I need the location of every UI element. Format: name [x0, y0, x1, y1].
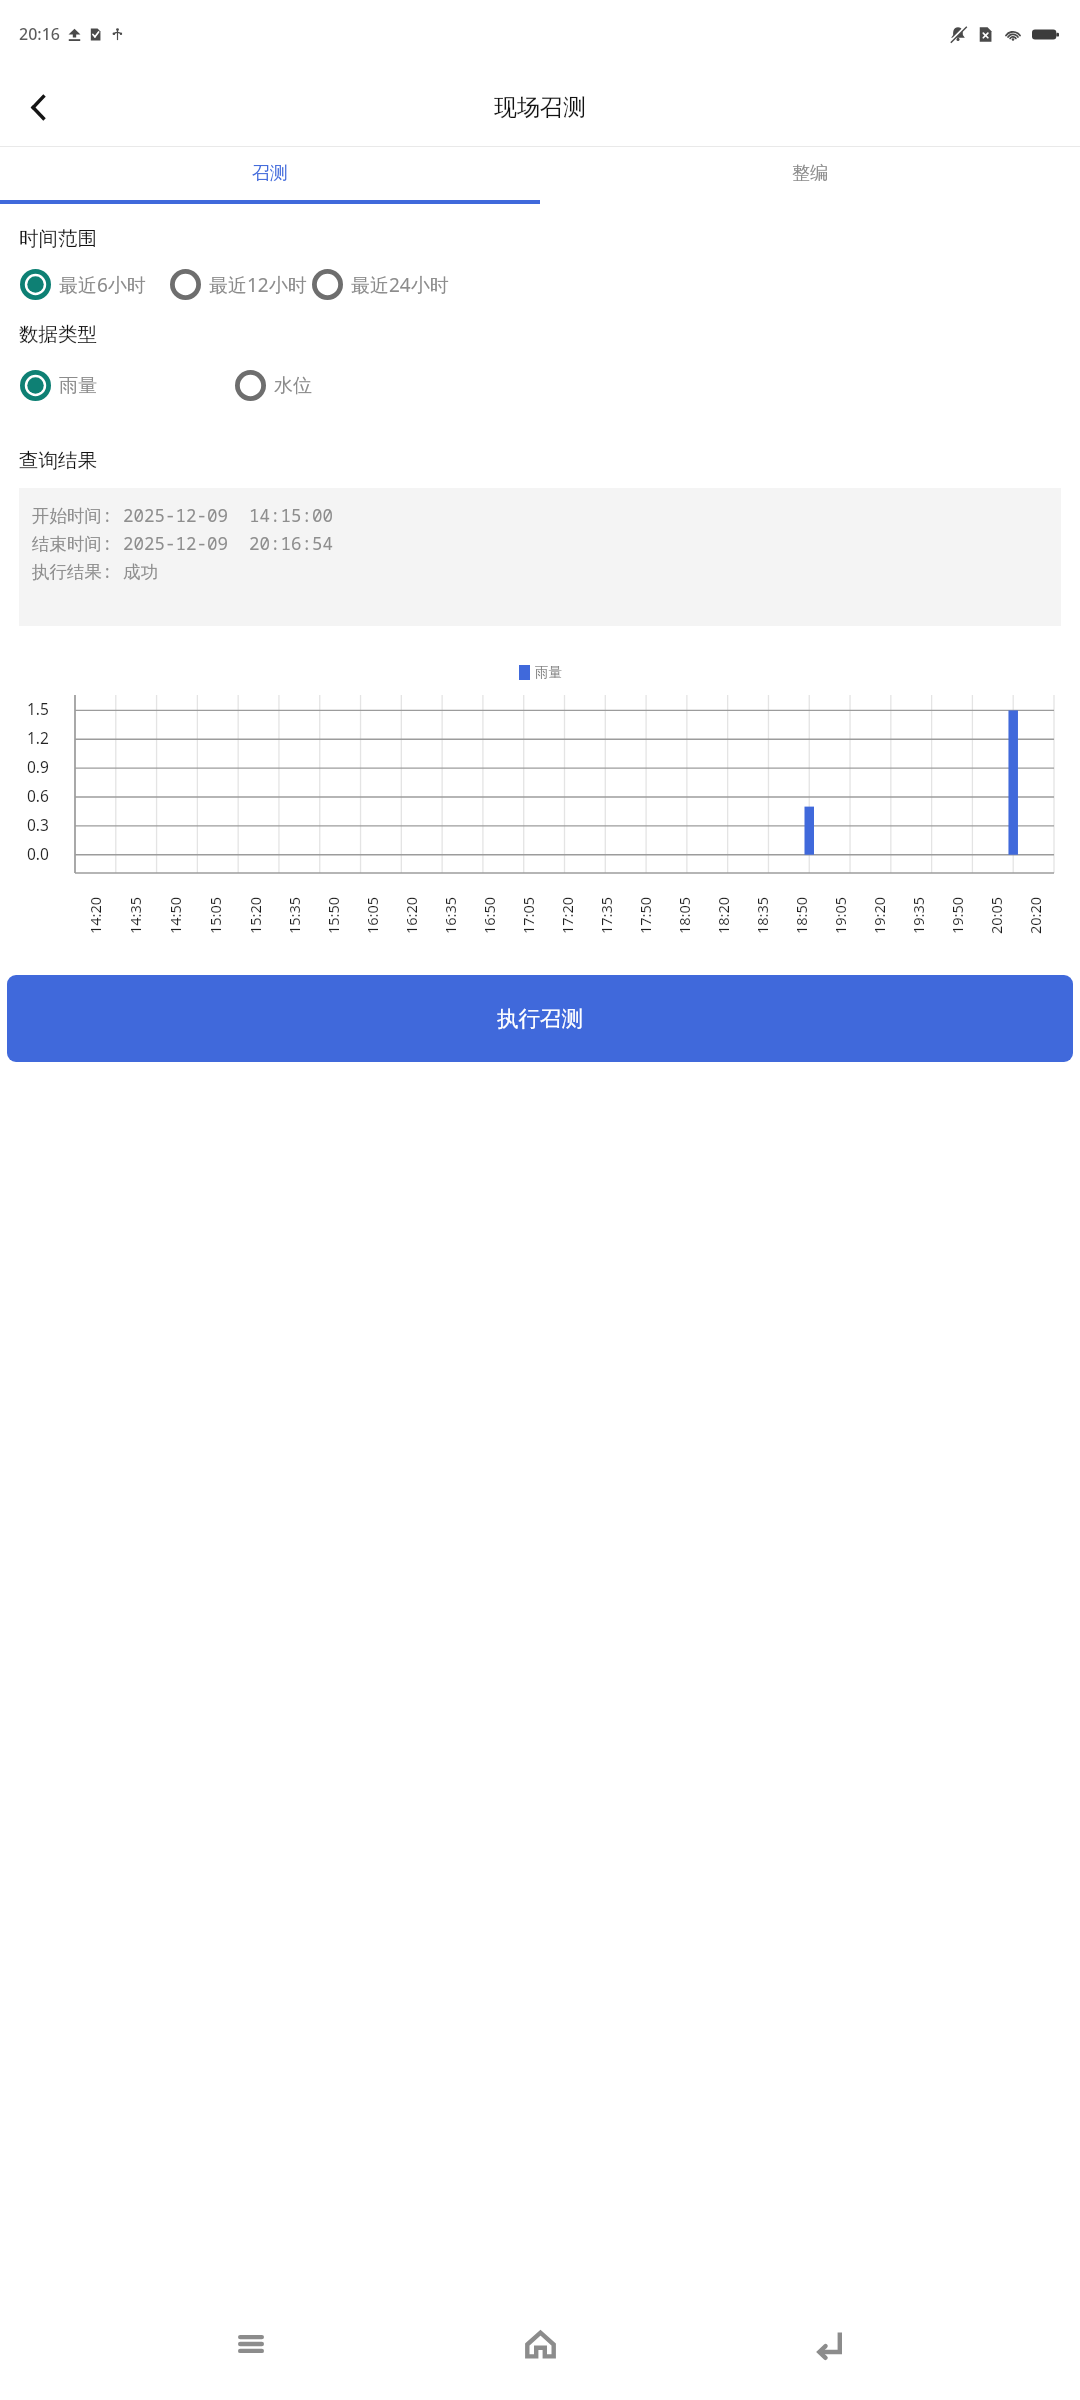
button[interactable]: 最近24小时 — [311, 268, 449, 301]
staticText: 1.5 — [27, 698, 49, 719]
staticText: 雨量 — [535, 664, 562, 681]
button[interactable]: 返回 — [8, 77, 68, 137]
staticText: 20:20 — [1025, 896, 1045, 934]
staticText: 20:05 — [986, 896, 1006, 934]
staticText: 17:05 — [518, 896, 538, 934]
staticText: 最近12小时 — [209, 272, 307, 298]
button[interactable]: 最近12小时 — [169, 268, 311, 301]
button[interactable]: 召测 — [0, 147, 540, 200]
staticText: 结束时间: 2025-12-09 20:16:54 — [32, 531, 333, 555]
staticText: 0.6 — [27, 785, 49, 806]
staticText: 18:20 — [713, 896, 733, 934]
staticText: 17:35 — [596, 896, 616, 934]
staticText: 数据类型 — [19, 322, 97, 347]
button[interactable]: 返回 — [791, 2305, 869, 2383]
staticText: 16:35 — [440, 896, 460, 934]
staticText: 0.9 — [27, 756, 49, 777]
button[interactable]: 雨量 — [19, 369, 234, 402]
staticText: 14:20 — [85, 896, 105, 934]
button[interactable]: 最近任务 — [212, 2305, 290, 2383]
staticText: 0.0 — [27, 843, 49, 864]
staticText: 15:05 — [205, 896, 225, 934]
button[interactable]: 主屏幕 — [501, 2305, 579, 2383]
staticText: 开始时间: 2025-12-09 14:15:00 — [32, 503, 333, 527]
staticText: 雨量 — [59, 374, 97, 398]
button[interactable]: 整编 — [540, 147, 1080, 200]
staticText: 19:20 — [869, 896, 889, 934]
staticText: 17:20 — [557, 896, 577, 934]
staticText: 0.3 — [27, 814, 49, 835]
staticText: 时间范围 — [19, 226, 97, 251]
staticText: 14:35 — [125, 896, 145, 934]
staticText: 18:05 — [674, 896, 694, 934]
staticText: 召测 — [252, 162, 288, 185]
staticText: 1.2 — [27, 727, 49, 748]
staticText: 15:50 — [323, 896, 343, 934]
button[interactable]: 最近6小时 — [19, 268, 169, 301]
staticText: 15:35 — [284, 896, 304, 934]
staticText: 20:16 — [19, 23, 60, 45]
staticText: 18:35 — [752, 896, 772, 934]
staticText: 最近6小时 — [59, 272, 146, 298]
staticText: 19:35 — [908, 896, 928, 934]
staticText: 15:20 — [245, 896, 265, 934]
staticText: 执行召测 — [497, 1005, 583, 1032]
staticText: 整编 — [792, 162, 828, 185]
staticText: 16:05 — [362, 896, 382, 934]
staticText: 14:50 — [165, 896, 185, 934]
staticText: 执行结果: 成功 — [32, 559, 158, 583]
staticText: 16:50 — [479, 896, 499, 934]
staticText: 17:50 — [635, 896, 655, 934]
staticText: 19:50 — [947, 896, 967, 934]
staticText: 查询结果 — [19, 448, 97, 473]
staticText: 水位 — [274, 374, 312, 398]
staticText: 16:20 — [401, 896, 421, 934]
button[interactable]: 执行召测 — [7, 975, 1073, 1062]
staticText: 最近24小时 — [351, 272, 449, 298]
staticText: 现场召测 — [494, 93, 586, 122]
staticText: 18:50 — [791, 896, 811, 934]
button[interactable]: 水位 — [234, 369, 312, 402]
staticText: 19:05 — [830, 896, 850, 934]
